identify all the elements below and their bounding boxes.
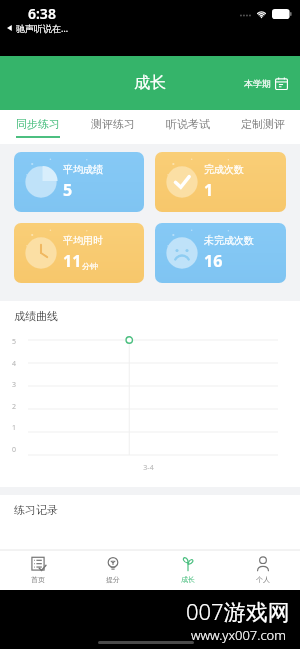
- staticText: 成绩曲线: [14, 309, 58, 323]
- button[interactable]: 同步练习: [0, 110, 75, 144]
- staticText: 练习记录: [14, 503, 58, 517]
- staticText: 1: [204, 179, 214, 201]
- staticText: 首页: [31, 575, 45, 584]
- button[interactable]: 首页: [0, 550, 75, 590]
- button[interactable]: 个人: [225, 550, 300, 590]
- staticText: 11: [63, 250, 82, 272]
- staticText: 定制测评: [241, 117, 285, 131]
- staticText: 驰声听说在…: [16, 22, 69, 34]
- button[interactable]: 平均用时: [14, 223, 144, 283]
- staticText: www.yx007.com: [191, 626, 286, 644]
- staticText: 听说考试: [166, 117, 210, 131]
- staticText: 2: [12, 402, 17, 412]
- button[interactable]: 本学期: [240, 73, 292, 94]
- staticText: 成长: [181, 575, 195, 584]
- staticText: 完成次数: [204, 163, 244, 176]
- button[interactable]: 定制测评: [225, 110, 300, 144]
- staticText: 16: [204, 250, 223, 272]
- button[interactable]: 提分: [75, 550, 150, 590]
- staticText: 同步练习: [16, 117, 60, 131]
- staticText: 未完成次数: [204, 234, 254, 247]
- button[interactable]: 听说考试: [150, 110, 225, 144]
- staticText: 提分: [106, 575, 120, 584]
- staticText: 个人: [256, 575, 270, 584]
- staticText: 5: [63, 179, 73, 201]
- staticText: 007游戏网: [186, 596, 290, 626]
- staticText: 6:38: [28, 4, 56, 23]
- staticText: 成长: [134, 73, 166, 93]
- button[interactable]: 平均成绩: [14, 152, 144, 212]
- button[interactable]: 未完成次数: [155, 223, 286, 283]
- button[interactable]: 完成次数: [155, 152, 286, 212]
- staticText: 平均成绩: [63, 163, 103, 176]
- staticText: 3: [12, 380, 17, 390]
- staticText: 0: [12, 445, 17, 455]
- button[interactable]: 成长: [150, 550, 225, 590]
- staticText: 本学期: [244, 78, 271, 89]
- button[interactable]: 测评练习: [75, 110, 150, 144]
- staticText: 4: [12, 359, 17, 369]
- staticText: 1: [12, 423, 17, 433]
- staticText: 3-4: [143, 463, 154, 473]
- other: Select term: [275, 77, 288, 90]
- staticText: 分钟: [82, 261, 98, 271]
- staticText: 平均用时: [63, 234, 103, 247]
- staticText: 5: [12, 337, 17, 347]
- staticText: 测评练习: [91, 117, 135, 131]
